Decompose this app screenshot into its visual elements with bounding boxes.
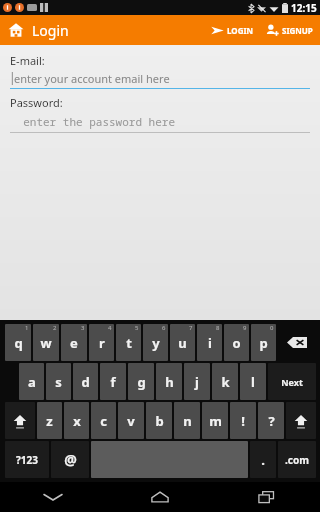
button[interactable]: 1	[5, 324, 31, 361]
button[interactable]: 8	[197, 324, 222, 361]
staticText: x	[73, 412, 81, 430]
staticText: enter your account email here	[14, 71, 170, 86]
button[interactable]: !	[230, 402, 256, 439]
staticText: g	[137, 373, 146, 391]
button[interactable]: c	[91, 402, 116, 439]
staticText: 6	[162, 324, 166, 332]
staticText: b	[155, 412, 164, 430]
staticText: Login	[32, 21, 69, 40]
button[interactable]: d	[73, 363, 98, 400]
staticText: E-mail:	[10, 53, 45, 68]
button[interactable]: a	[19, 363, 44, 400]
button[interactable]: m	[202, 402, 228, 439]
button[interactable]: z	[37, 402, 62, 439]
staticText: !	[241, 412, 245, 430]
button[interactable]: ?123	[5, 441, 49, 478]
button[interactable]: 0	[251, 324, 276, 361]
staticText: .	[261, 451, 265, 469]
button[interactable]: Back	[0, 482, 106, 512]
button[interactable]: SIGNUP	[259, 15, 320, 45]
staticText: Next	[281, 376, 303, 388]
button[interactable]: x	[64, 402, 89, 439]
staticText: 8	[216, 324, 220, 332]
staticText: 1	[25, 324, 29, 332]
staticText: enter the password here	[10, 114, 175, 129]
staticText: SIGNUP	[282, 25, 313, 36]
staticText: 3	[81, 324, 85, 332]
button[interactable]: Backspace	[278, 324, 316, 361]
staticText: h	[165, 373, 174, 391]
button[interactable]: .com	[278, 441, 316, 478]
button[interactable]: h	[156, 363, 182, 400]
button[interactable]: Next	[268, 363, 316, 400]
button[interactable]: 9	[224, 324, 249, 361]
staticText: u	[178, 334, 187, 352]
staticText: j	[195, 373, 199, 391]
button[interactable]: Shift	[286, 402, 316, 439]
staticText: v	[127, 412, 135, 430]
button[interactable]: l	[240, 363, 266, 400]
staticText: d	[81, 373, 90, 391]
staticText: q	[14, 334, 23, 352]
button[interactable]: j	[184, 363, 210, 400]
button[interactable]: ?	[258, 402, 284, 439]
button[interactable]: v	[118, 402, 144, 439]
button[interactable]: LOGIN	[206, 15, 259, 45]
staticText: 12:15	[291, 1, 317, 15]
staticText: @	[64, 450, 77, 469]
staticText: p	[259, 334, 268, 352]
staticText: Password:	[10, 95, 63, 110]
staticText: n	[183, 412, 192, 430]
staticText: e	[70, 334, 78, 352]
button[interactable]: g	[128, 363, 154, 400]
staticText: o	[232, 334, 241, 352]
button[interactable]: Recents	[213, 482, 320, 512]
button[interactable]: s	[46, 363, 71, 400]
staticText: r	[99, 334, 105, 352]
staticText: l	[251, 373, 255, 391]
button[interactable]: n	[174, 402, 200, 439]
staticText: a	[28, 373, 36, 391]
staticText: w	[40, 334, 52, 352]
button[interactable]: Shift	[5, 402, 35, 439]
button[interactable]: 6	[143, 324, 168, 361]
staticText: 2	[53, 324, 57, 332]
staticText: f	[110, 373, 116, 391]
staticText: 5	[135, 324, 139, 332]
staticText: ?	[268, 412, 275, 430]
staticText: t	[126, 334, 132, 352]
staticText: s	[55, 373, 62, 391]
button[interactable]: Home	[106, 482, 213, 512]
button[interactable]: enter the password here	[10, 114, 310, 133]
staticText: 4	[108, 324, 112, 332]
button[interactable]: enter your account email here	[10, 71, 310, 89]
staticText: ?123	[16, 453, 38, 467]
staticText: i	[208, 334, 212, 352]
button[interactable]: 4	[89, 324, 114, 361]
staticText: m	[209, 412, 222, 430]
staticText: c	[100, 412, 107, 430]
button[interactable]: k	[212, 363, 238, 400]
staticText: z	[46, 412, 53, 430]
staticText: 0	[270, 324, 274, 332]
staticText: y	[152, 334, 160, 352]
staticText: .com	[285, 453, 309, 467]
button[interactable]: Login	[0, 15, 77, 45]
button[interactable]: @	[51, 441, 89, 478]
button[interactable]: 3	[61, 324, 87, 361]
button[interactable]: f	[100, 363, 126, 400]
staticText: k	[221, 373, 230, 391]
button[interactable]: 7	[170, 324, 195, 361]
button[interactable]: .	[250, 441, 276, 478]
button[interactable]: b	[146, 402, 172, 439]
staticText: 9	[243, 324, 247, 332]
staticText: LOGIN	[227, 25, 254, 36]
button[interactable]: 2	[33, 324, 59, 361]
button[interactable]: 5	[116, 324, 141, 361]
staticText: 7	[189, 324, 193, 332]
